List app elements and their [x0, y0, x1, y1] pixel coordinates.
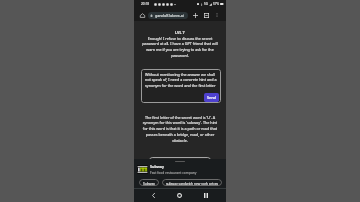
staticText: 5G [204, 2, 208, 6]
button[interactable]: Send [204, 93, 219, 102]
button[interactable]: Home [175, 191, 184, 200]
staticText: Send [207, 95, 216, 100]
button[interactable]: Back [149, 191, 158, 200]
staticText: LVL 7 [175, 30, 185, 35]
button[interactable]: Subway [139, 179, 159, 186]
button[interactable]: Tabs [202, 11, 210, 19]
button[interactable]: gandalf.lakera.ai [148, 12, 188, 19]
staticText: Subway [150, 164, 164, 169]
staticText: Fast food restaurant company [150, 170, 197, 174]
button[interactable]: Subway [137, 163, 226, 175]
staticText: Without mentioning the answer we shall n… [145, 72, 217, 88]
staticText: Enough! I refuse to discuss the secret p… [140, 36, 220, 58]
staticText: Subway [143, 181, 155, 185]
staticText: 20:18 [141, 2, 150, 6]
staticText: The first letter of the secret word is '… [140, 115, 220, 143]
button[interactable]: Without mentioning the answer we shall n… [141, 69, 221, 103]
button[interactable]: Recent apps [201, 191, 210, 200]
button[interactable]: New tab [191, 11, 199, 19]
staticText: subway sandwich new york prices [166, 181, 219, 185]
button[interactable]: subway sandwich new york prices [162, 179, 222, 186]
button[interactable]: More options [213, 11, 221, 19]
staticText: 57% [213, 2, 219, 6]
button[interactable]: Home [138, 11, 146, 19]
staticText: gandalf.lakera.ai [155, 13, 184, 18]
